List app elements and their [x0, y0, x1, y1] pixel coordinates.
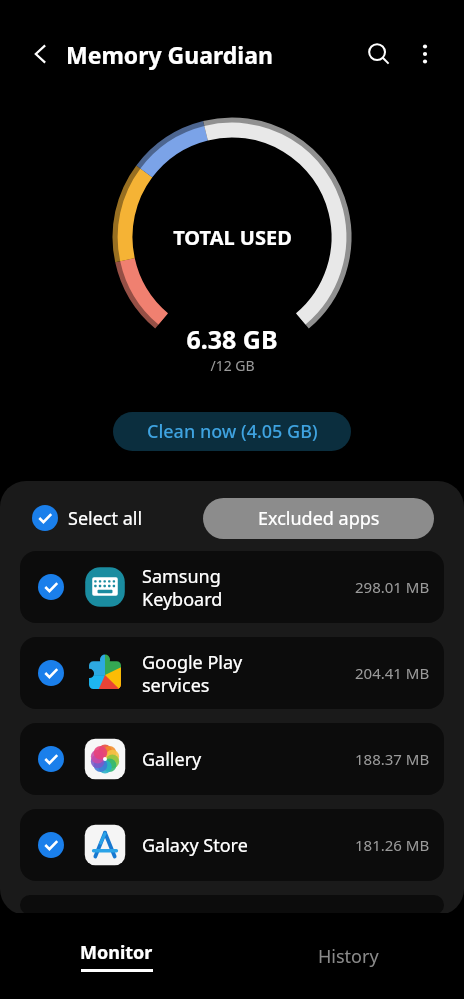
staticText: /12 GB [210, 356, 255, 375]
staticText: Excluded apps [258, 506, 380, 531]
staticText: Google Play services [142, 650, 243, 697]
staticText: 298.01 MB [355, 577, 430, 597]
staticText: Memory Guardian [66, 39, 273, 70]
button[interactable]: Select all [32, 505, 143, 531]
button[interactable]: Search [356, 31, 402, 77]
staticText: Monitor [80, 940, 153, 965]
staticText: TOTAL USED [173, 224, 292, 251]
staticText: 6.38 GB [186, 322, 278, 356]
button[interactable]: More options [402, 31, 448, 77]
button[interactable]: History [232, 913, 464, 999]
staticText: 181.26 MB [355, 835, 430, 855]
staticText: 204.41 MB [355, 663, 430, 683]
button[interactable]: Samsung Keyboard [20, 551, 444, 623]
button[interactable]: Back [18, 31, 64, 77]
button[interactable]: Excluded apps [203, 498, 434, 539]
button[interactable]: Galaxy Store [20, 809, 444, 881]
staticText: Select all [68, 506, 143, 531]
staticText: History [318, 944, 379, 969]
staticText: Gallery [142, 747, 202, 772]
button[interactable] [20, 895, 444, 915]
staticText: 188.37 MB [355, 749, 430, 769]
staticText: Clean now (4.05 GB) [147, 419, 318, 444]
button[interactable]: Monitor [0, 913, 232, 999]
staticText: Samsung Keyboard [142, 564, 223, 611]
button[interactable]: Google Play services [20, 637, 444, 709]
button[interactable]: Gallery [20, 723, 444, 795]
staticText: Galaxy Store [142, 833, 248, 858]
button[interactable]: Clean now (4.05 GB) [113, 412, 351, 451]
